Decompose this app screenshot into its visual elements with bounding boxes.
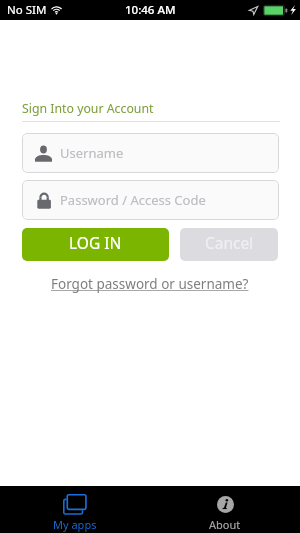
staticText: Password / Access Code: [60, 191, 206, 209]
staticText: My apps: [53, 517, 97, 532]
staticText: 10:46 AM: [125, 2, 176, 18]
button[interactable]: My apps: [0, 486, 150, 533]
button[interactable]: Forgot password or username?: [51, 275, 249, 293]
staticText: About: [209, 517, 241, 532]
button[interactable]: Username: [22, 133, 279, 173]
staticText: Username: [60, 144, 124, 162]
staticText: Sign Into your Account: [22, 100, 154, 117]
button[interactable]: Password / Access Code: [22, 180, 279, 220]
staticText: Cancel: [205, 232, 254, 253]
button[interactable]: About: [150, 486, 300, 533]
staticText: LOG IN: [69, 232, 122, 253]
staticText: No SIM: [7, 2, 47, 18]
button[interactable]: Cancel: [180, 228, 278, 261]
button[interactable]: LOG IN: [22, 228, 169, 261]
